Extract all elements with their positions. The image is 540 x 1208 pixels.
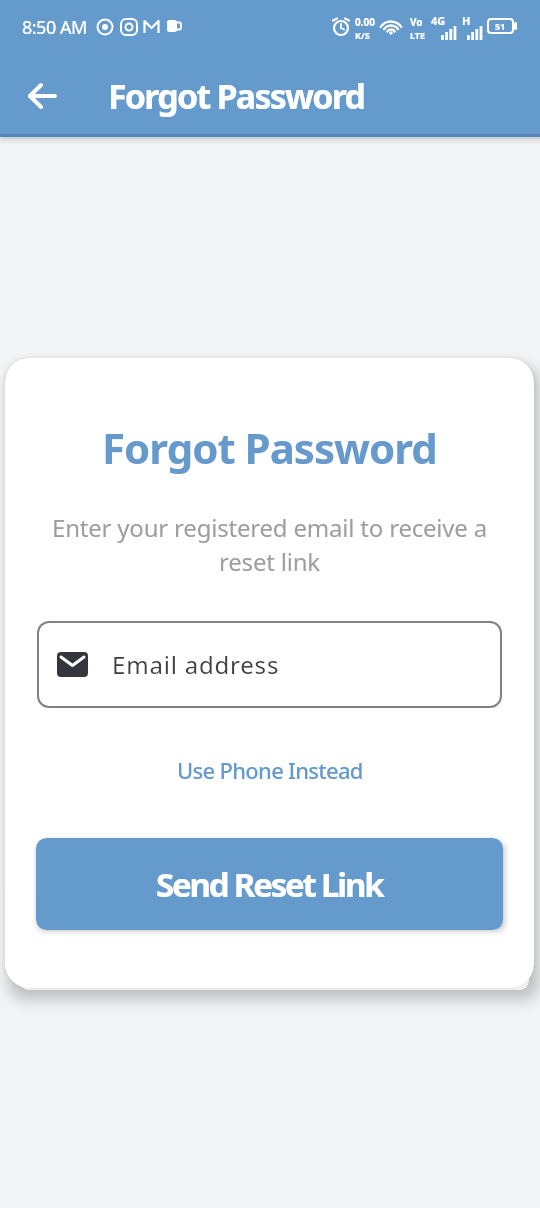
staticText: Vo (410, 15, 423, 29)
staticText: LTE (410, 29, 426, 41)
button[interactable]: Use Phone Instead (177, 755, 363, 785)
button[interactable]: Email address (37, 621, 502, 708)
staticText: Email address (112, 648, 280, 681)
staticText: Forgot Password (108, 73, 365, 119)
staticText: 4G (431, 13, 446, 28)
staticText: Send Reset Link (156, 862, 383, 907)
staticText: 0.00 (355, 15, 375, 29)
staticText: 8:50 AM (22, 15, 87, 40)
staticText: K/S (355, 29, 370, 41)
staticText: Enter your registered email to receive a… (52, 511, 487, 578)
staticText: H (462, 13, 471, 28)
button[interactable] (24, 78, 60, 114)
staticText: 51 (495, 20, 506, 32)
staticText: Use Phone Instead (177, 755, 363, 785)
button[interactable]: Send Reset Link (36, 838, 503, 930)
staticText: Forgot Password (102, 419, 437, 476)
